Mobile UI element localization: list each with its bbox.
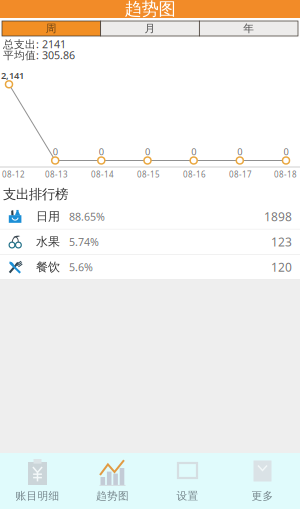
button[interactable]: 年	[199, 21, 298, 36]
staticText: 更多	[251, 489, 273, 502]
staticText: 0	[53, 145, 58, 158]
button[interactable]: 周	[2, 21, 101, 36]
staticText: 账目明细	[15, 489, 59, 502]
staticText: 08-13	[45, 169, 68, 180]
staticText: 0	[145, 145, 150, 158]
staticText: 08-16	[183, 169, 206, 180]
staticText: 08-18	[274, 169, 297, 180]
staticText: 2,141	[1, 69, 24, 82]
button[interactable]: 餐饮	[0, 255, 300, 280]
staticText: 88.65%	[69, 209, 105, 224]
staticText: 设置	[176, 489, 198, 502]
staticText: 08-12	[2, 169, 25, 180]
button[interactable]: 日用	[0, 204, 300, 230]
staticText: 日用	[36, 209, 60, 224]
staticText: 趋势图	[96, 489, 129, 502]
staticText: 0	[237, 145, 242, 158]
staticText: 0	[283, 145, 288, 158]
staticText: 月	[144, 22, 155, 35]
button[interactable]: 更多	[225, 453, 300, 509]
staticText: 5.74%	[69, 235, 99, 249]
button[interactable]: 设置	[150, 453, 225, 509]
staticText: 1898	[264, 209, 292, 225]
staticText: 08-15	[137, 169, 160, 180]
button[interactable]: 水果	[0, 230, 300, 255]
staticText: 总支出: 2141	[3, 37, 66, 51]
staticText: 120	[271, 259, 292, 275]
staticText: 周	[46, 22, 57, 35]
staticText: 餐饮	[36, 260, 60, 274]
staticText: 趋势图	[124, 0, 175, 20]
button[interactable]: 月	[101, 21, 199, 36]
button[interactable]: 账目明细	[0, 453, 75, 509]
staticText: 08-14	[91, 169, 114, 180]
staticText: 0	[99, 145, 104, 158]
staticText: 08-17	[229, 169, 252, 180]
staticText: 水果	[36, 234, 60, 249]
staticText: 5.6%	[69, 260, 93, 274]
staticText: 平均值: 305.86	[3, 48, 75, 62]
button[interactable]: 趋势图	[75, 453, 150, 509]
staticText: 支出排行榜	[3, 186, 68, 202]
staticText: 年	[243, 22, 254, 35]
staticText: 0	[191, 145, 196, 158]
staticText: 123	[271, 234, 292, 250]
